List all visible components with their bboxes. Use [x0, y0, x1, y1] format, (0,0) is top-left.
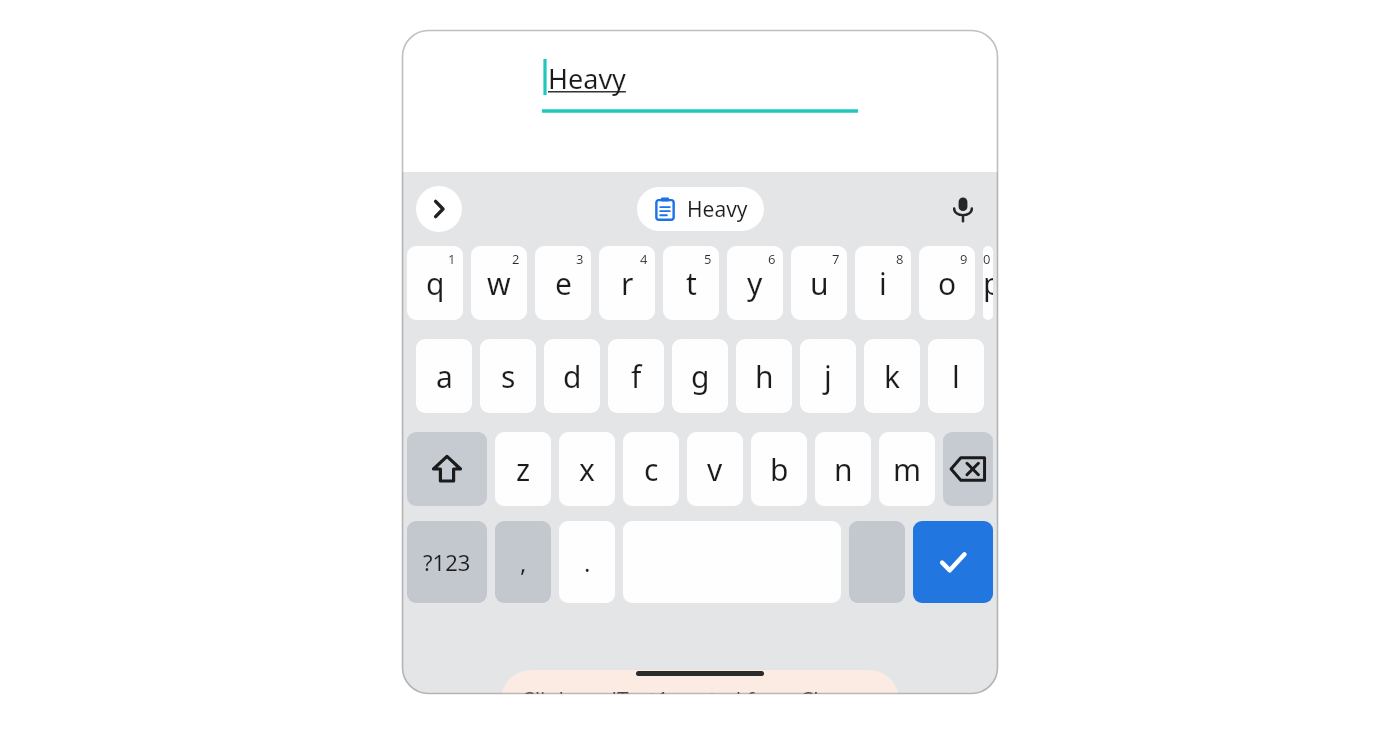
- button[interactable]: d: [544, 339, 600, 413]
- button[interactable]: m: [879, 432, 935, 506]
- staticText: 0: [983, 250, 986, 268]
- staticText: Heavy: [687, 195, 748, 224]
- button[interactable]: h: [736, 339, 792, 413]
- button[interactable]: i: [855, 246, 911, 320]
- button[interactable]: Enter: [913, 521, 993, 603]
- button[interactable]: Shift: [407, 432, 487, 506]
- button[interactable]: Backspace: [943, 432, 993, 506]
- staticText: q: [426, 263, 445, 304]
- button[interactable]: z: [495, 432, 551, 506]
- staticText: Heavy: [548, 60, 626, 97]
- button[interactable]: v: [687, 432, 743, 506]
- button[interactable]: k: [864, 339, 920, 413]
- staticText: e: [555, 263, 572, 304]
- staticText: i: [879, 263, 887, 304]
- staticText: h: [755, 356, 774, 397]
- button[interactable]: y: [727, 246, 783, 320]
- button[interactable]: b: [751, 432, 807, 506]
- staticText: 7: [832, 250, 840, 268]
- button[interactable]: r: [599, 246, 655, 320]
- staticText: 3: [576, 250, 584, 268]
- button[interactable]: x: [559, 432, 615, 506]
- staticText: u: [810, 263, 829, 304]
- button[interactable]: q: [407, 246, 463, 320]
- staticText: 5: [704, 250, 712, 268]
- staticText: g: [691, 356, 710, 397]
- staticText: r: [621, 263, 634, 304]
- button[interactable]: t: [663, 246, 719, 320]
- button[interactable]: o: [919, 246, 975, 320]
- button[interactable]: s: [480, 339, 536, 413]
- button[interactable]: ?123: [407, 521, 487, 603]
- staticText: t: [686, 263, 697, 304]
- staticText: x: [579, 449, 595, 490]
- button[interactable]: u: [791, 246, 847, 320]
- staticText: c: [644, 449, 659, 490]
- button[interactable]: g: [672, 339, 728, 413]
- button[interactable]: c: [623, 432, 679, 506]
- button[interactable]: Voice input: [942, 188, 984, 230]
- staticText: 4: [640, 250, 648, 268]
- button[interactable]: j: [800, 339, 856, 413]
- staticText: b: [770, 449, 789, 490]
- staticText: y: [747, 263, 763, 304]
- staticText: ?123: [423, 547, 471, 577]
- staticText: z: [516, 449, 531, 490]
- staticText: j: [824, 356, 832, 397]
- staticText: 1: [448, 250, 456, 268]
- staticText: 9: [960, 250, 968, 268]
- button[interactable]: Heavy: [637, 187, 764, 231]
- staticText: p: [983, 263, 993, 304]
- staticText: k: [884, 356, 901, 397]
- staticText: ,: [520, 546, 527, 579]
- button[interactable]: [849, 521, 905, 603]
- staticText: n: [834, 449, 853, 490]
- staticText: ClipboardTest1 pasted from Chrome: [521, 686, 879, 694]
- button[interactable]: ,: [495, 521, 551, 603]
- button[interactable]: .: [559, 521, 615, 603]
- staticText: 8: [896, 250, 904, 268]
- button[interactable]: Heavy: [542, 58, 858, 118]
- staticText: o: [938, 263, 957, 304]
- staticText: 6: [768, 250, 776, 268]
- button[interactable]: p: [983, 246, 993, 320]
- button[interactable]: n: [815, 432, 871, 506]
- staticText: w: [487, 263, 511, 304]
- staticText: m: [893, 449, 922, 490]
- button[interactable]: f: [608, 339, 664, 413]
- button[interactable]: Expand toolbar: [416, 186, 462, 232]
- staticText: a: [436, 356, 453, 397]
- staticText: v: [707, 449, 723, 490]
- button[interactable]: a: [416, 339, 472, 413]
- staticText: .: [584, 546, 591, 579]
- staticText: d: [563, 356, 582, 397]
- staticText: s: [501, 356, 516, 397]
- button[interactable]: w: [471, 246, 527, 320]
- button[interactable]: e: [535, 246, 591, 320]
- staticText: f: [631, 356, 642, 397]
- button[interactable]: l: [928, 339, 984, 413]
- staticText: l: [952, 356, 960, 397]
- staticText: 2: [512, 250, 520, 268]
